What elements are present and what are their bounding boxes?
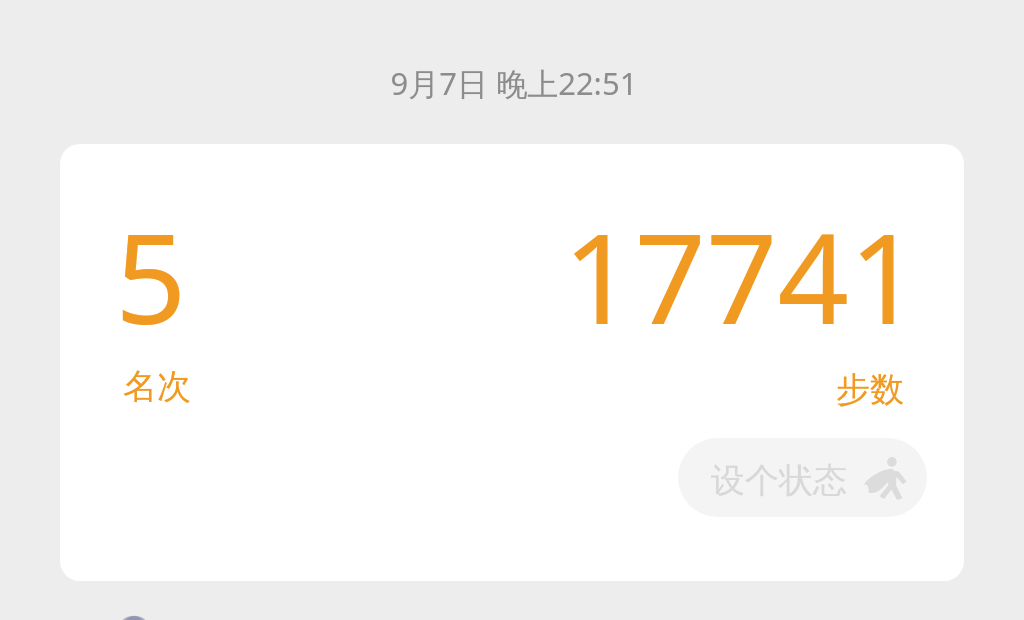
button[interactable]: 设个状态 [678,438,927,517]
staticText: 设个状态 [711,459,847,502]
staticText: 名次 [123,365,191,408]
other: Set status [862,454,908,500]
staticText: 步数 [836,368,904,411]
button[interactable]: 5 [60,144,964,581]
staticText: 9月7日 晚上22:51 [2,62,1024,104]
staticText: 5 [115,190,187,360]
staticText: 17741 [563,190,921,360]
